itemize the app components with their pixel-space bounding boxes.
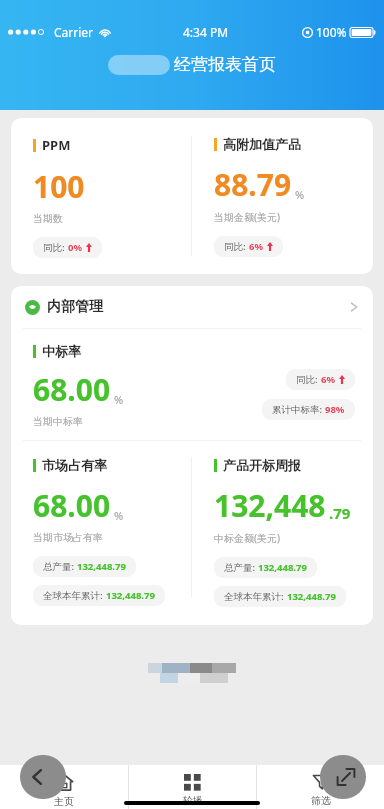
other: 展开内部管理 — [349, 300, 359, 314]
staticText: 中标金额(美元) — [214, 531, 280, 545]
staticText: 轮播 — [183, 794, 203, 807]
button[interactable]: 中标率 — [11, 329, 373, 440]
staticText: % — [114, 508, 124, 523]
staticText: 6% — [249, 240, 264, 253]
staticText: 筛选 — [311, 794, 331, 807]
staticText: 主页 — [54, 795, 74, 808]
staticText: 当期市场占有率 — [33, 531, 103, 544]
staticText: 68.00 — [33, 485, 111, 526]
button[interactable]: 同比: — [33, 237, 102, 258]
staticText: 高附加值产品 — [223, 136, 301, 152]
staticText: 同比: — [296, 373, 321, 386]
button[interactable]: 总产量: — [214, 557, 317, 578]
staticText: 中标率 — [42, 343, 81, 359]
button[interactable]: 筛选 — [257, 767, 384, 807]
staticText: 132,448.79 — [77, 560, 126, 573]
staticText: 6% — [321, 373, 336, 386]
staticText: 内部管理 — [47, 298, 103, 316]
staticText: 同比: — [43, 241, 68, 254]
staticText: 0% — [68, 241, 83, 254]
staticText: % — [295, 187, 305, 202]
staticText: 当期数 — [33, 212, 63, 225]
button[interactable]: 内部管理 — [11, 286, 373, 328]
staticText: 全球本年累计: — [43, 589, 106, 602]
staticText: 4:34 PM — [183, 24, 229, 40]
staticText: 当期中标率 — [33, 415, 83, 428]
staticText: 98% — [325, 403, 345, 416]
button[interactable]: 全球本年累计: — [33, 585, 165, 606]
button[interactable]: 总产量: — [33, 556, 136, 577]
staticText: 88.79 — [214, 164, 292, 205]
button[interactable]: 返回 — [20, 755, 66, 799]
staticText: 100 — [33, 166, 85, 207]
button[interactable]: 全屏 — [320, 755, 366, 799]
staticText: 132,448.79 — [106, 589, 155, 602]
button[interactable]: 高附加值产品 — [192, 136, 373, 257]
staticText: .79 — [329, 503, 351, 523]
staticText: 100% — [316, 24, 347, 40]
button[interactable]: 同比: — [214, 236, 283, 257]
button[interactable]: 产品开标周报 — [192, 457, 373, 607]
staticText: 132,448.79 — [258, 561, 307, 574]
button[interactable]: 累计中标率: — [262, 399, 355, 420]
staticText: Carrier — [54, 24, 94, 40]
staticText: 经营报表首页 — [174, 54, 276, 75]
button[interactable]: 同比: — [286, 369, 355, 390]
button[interactable]: 轮播 — [129, 768, 256, 807]
staticText: 当期金额(美元) — [214, 210, 280, 224]
button[interactable]: PPM — [11, 136, 191, 258]
staticText: 全球本年累计: — [224, 590, 287, 603]
button[interactable]: 主页 — [0, 767, 128, 808]
staticText: 132,448.79 — [287, 590, 336, 603]
staticText: % — [114, 392, 124, 407]
staticText: 同比: — [224, 240, 249, 253]
staticText: 68.00 — [33, 369, 111, 410]
staticText: 产品开标周报 — [223, 457, 301, 473]
staticText: 总产量: — [43, 560, 77, 573]
staticText: 累计中标率: — [272, 403, 325, 416]
staticText: 132,448 — [214, 485, 326, 526]
button[interactable]: 市场占有率 — [11, 457, 191, 606]
staticText: 市场占有率 — [42, 457, 107, 473]
staticText: PPM — [42, 136, 71, 154]
staticText: 总产量: — [224, 561, 258, 574]
button[interactable]: PPM — [11, 118, 373, 274]
button[interactable]: 全球本年累计: — [214, 586, 346, 607]
